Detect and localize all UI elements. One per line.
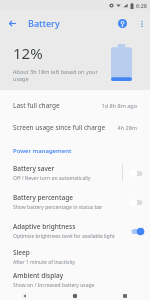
staticText: Battery percentage: [13, 193, 73, 202]
button[interactable]: Back: [0, 11, 24, 35]
staticText: Last full charge: [13, 101, 101, 110]
button[interactable]: Sleep: [0, 245, 150, 268]
staticText: Power management: [13, 147, 72, 155]
staticText: Adaptive brightness: [13, 222, 76, 231]
button[interactable]: Help: [112, 13, 133, 34]
staticText: Battery: [28, 17, 60, 29]
staticText: 1d 8h 8m ago: [101, 102, 137, 109]
button[interactable]: Back: [0, 291, 50, 300]
button[interactable]: Battery saver: [0, 158, 150, 187]
staticText: Sleep: [13, 248, 30, 257]
staticText: 4h 28m: [117, 124, 137, 131]
button[interactable]: Ambient display: [0, 268, 150, 291]
button[interactable]: Last full charge: [0, 94, 150, 116]
staticText: Ambient display: [13, 271, 64, 280]
staticText: Screen usage since full charge: [13, 123, 117, 132]
staticText: About 3h 18m left based on your usage: [13, 68, 103, 82]
button[interactable]: More options: [133, 15, 150, 32]
staticText: Optimize brightness level for available …: [13, 233, 115, 240]
button[interactable]: Battery percentage: [0, 187, 150, 216]
staticText: Battery saver: [13, 164, 55, 173]
button[interactable]: Off: [128, 195, 145, 209]
button[interactable]: Adaptive brightness: [0, 216, 150, 245]
button[interactable]: Off: [128, 166, 145, 180]
staticText: 6:28: [136, 2, 147, 9]
button[interactable]: Home: [50, 291, 100, 300]
button[interactable]: Screen usage since full charge: [0, 116, 150, 138]
staticText: After 1 minute of inactivity: [13, 259, 76, 266]
staticText: Show on / Increased battery usage: [13, 282, 95, 289]
staticText: Off / Never turn on automatically: [13, 175, 91, 182]
staticText: 12%: [13, 43, 43, 63]
staticText: Show battery percentage in status bar: [13, 204, 103, 211]
button[interactable]: On: [128, 224, 145, 238]
button[interactable]: Recent apps: [100, 291, 150, 300]
